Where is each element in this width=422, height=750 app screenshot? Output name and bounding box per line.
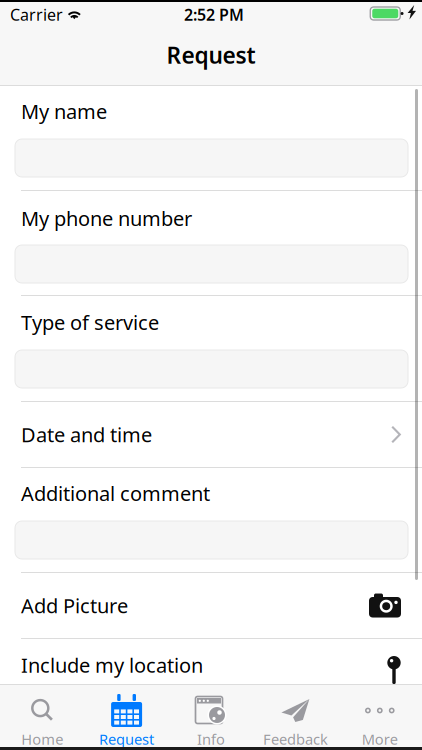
staticText: Home: [21, 729, 63, 749]
button[interactable]: More: [338, 685, 422, 747]
button[interactable]: Request: [84, 685, 169, 747]
staticText: Include my location: [21, 652, 203, 678]
staticText: Date and time: [21, 421, 152, 448]
button[interactable]: My name: [0, 86, 422, 190]
button[interactable]: My phone number: [0, 191, 422, 295]
button[interactable]: Feedback: [253, 685, 338, 747]
staticText: Carrier: [10, 4, 63, 25]
staticText: My name: [21, 98, 107, 125]
button[interactable]: Home: [0, 685, 84, 747]
staticText: Request: [166, 40, 255, 70]
button[interactable]: Include my location: [0, 639, 422, 684]
staticText: Add Picture: [21, 592, 128, 619]
staticText: My phone number: [21, 205, 192, 232]
button[interactable]: Date and time: [0, 402, 422, 467]
button[interactable]: Info: [169, 685, 253, 747]
staticText: Request: [99, 729, 154, 749]
staticText: Additional comment: [21, 480, 210, 507]
staticText: Type of service: [21, 309, 159, 336]
staticText: Feedback: [263, 729, 328, 749]
button[interactable]: Add Picture: [0, 573, 422, 638]
button[interactable]: Additional comment: [0, 468, 422, 572]
staticText: More: [362, 729, 398, 749]
staticText: Info: [197, 729, 225, 749]
staticText: 2:52 PM: [184, 4, 244, 25]
button[interactable]: Type of service: [0, 296, 422, 401]
